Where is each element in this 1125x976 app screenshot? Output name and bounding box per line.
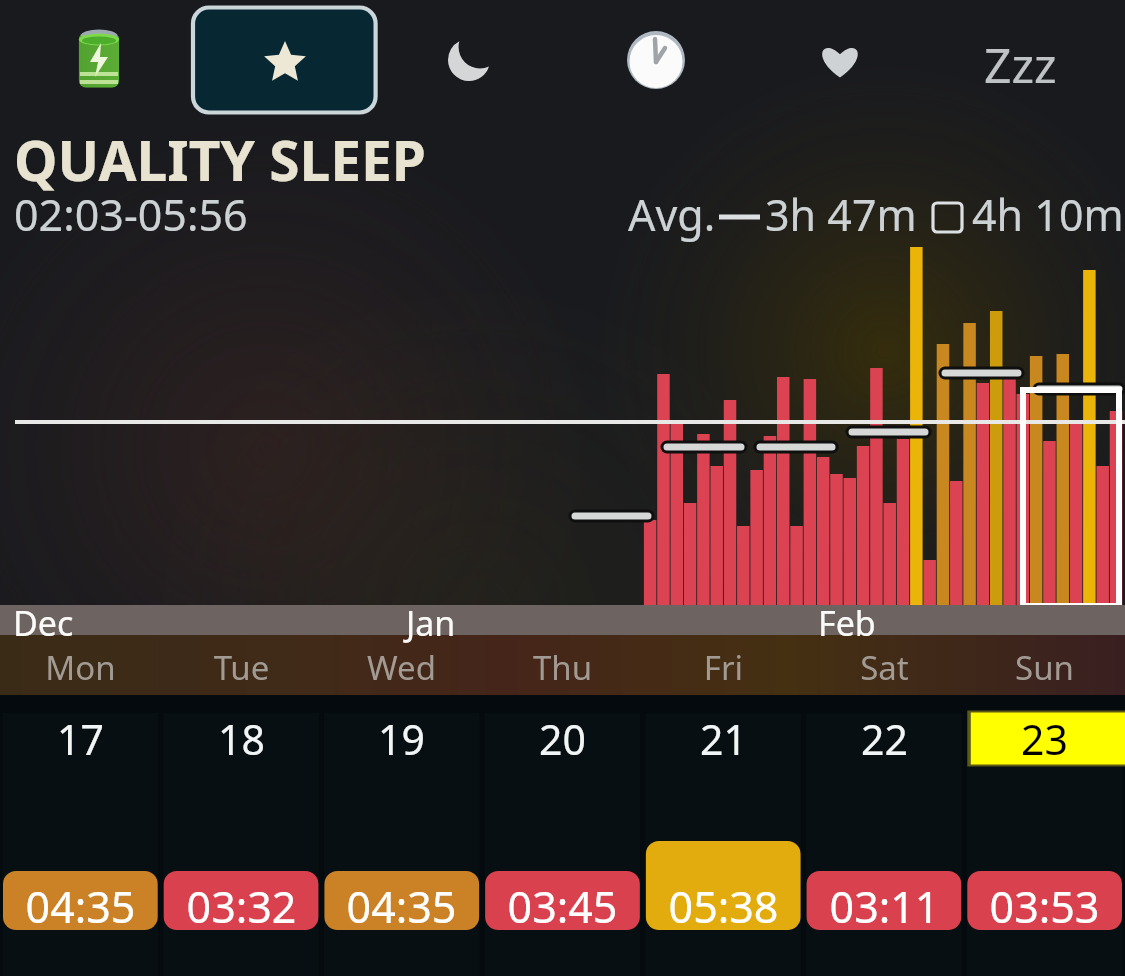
button[interactable]: Snooze: [955, 4, 1097, 116]
staticText: 04:35: [321, 877, 482, 936]
staticText: 03:45: [482, 877, 643, 936]
staticText: QUALITY SLEEP: [14, 122, 427, 197]
button[interactable]: Sleep history chart: [0, 240, 1125, 605]
staticText: Zzz: [984, 32, 1057, 97]
button[interactable]: Sat 22 03:11: [804, 695, 965, 976]
button[interactable]: Favourites: [193, 4, 376, 116]
staticText: Fri: [643, 645, 804, 690]
staticText: 19: [321, 711, 482, 767]
staticText: 17: [0, 711, 161, 767]
staticText: 20: [482, 711, 643, 767]
staticText: Mon: [0, 645, 161, 690]
staticText: 03:32: [161, 877, 322, 936]
button[interactable]: Wed 19 04:35: [321, 695, 482, 976]
button[interactable]: Battery: [28, 4, 170, 116]
staticText: Dec: [13, 600, 74, 646]
button[interactable]: Tue 18 03:32: [161, 695, 322, 976]
staticText: Tue: [161, 645, 322, 690]
staticText: 05:38: [643, 877, 804, 936]
staticText: 04:35: [0, 877, 161, 936]
button[interactable]: Alarm: [585, 4, 727, 116]
staticText: 22: [804, 711, 965, 767]
staticText: Sat: [804, 645, 965, 690]
staticText: Wed: [321, 645, 482, 690]
staticText: Jan: [406, 600, 456, 646]
button[interactable]: Sun 23 03:53: [964, 695, 1125, 976]
staticText: 03:53: [964, 877, 1125, 936]
staticText: 3h 47m: [765, 185, 917, 244]
staticText: Feb: [818, 600, 876, 646]
staticText: 4h 10m: [972, 185, 1124, 244]
button[interactable]: Thu 20 03:45: [482, 695, 643, 976]
button[interactable]: Heart rate: [770, 4, 912, 116]
button[interactable]: Night mode: [398, 4, 540, 116]
button[interactable]: Mon 17 04:35: [0, 695, 161, 976]
staticText: 21: [643, 711, 804, 767]
staticText: 23: [964, 711, 1125, 767]
button[interactable]: Fri 21 05:38: [643, 695, 804, 976]
button[interactable]: Month scrubber: [0, 605, 1125, 635]
staticText: 02:03-05:56: [14, 185, 248, 244]
staticText: Sun: [964, 645, 1125, 690]
staticText: Thu: [482, 645, 643, 690]
staticText: 18: [161, 711, 322, 767]
staticText: 03:11: [804, 877, 965, 936]
staticText: Avg.: [628, 185, 716, 244]
